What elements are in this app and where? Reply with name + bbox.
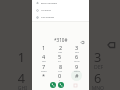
button[interactable]: Call [58, 82, 64, 88]
button[interactable]: 8 [53, 63, 67, 72]
button[interactable]: 4 [37, 53, 51, 62]
button[interactable]: Call settings [32, 14, 89, 21]
staticText: 1 [18, 48, 27, 65]
staticText: 6 [94, 69, 103, 85]
staticText: 3 [94, 48, 103, 65]
button[interactable]: 7 [37, 63, 51, 72]
staticText: + [59, 79, 61, 81]
button[interactable]: Accounts [32, 7, 89, 14]
button[interactable]: Add contact [72, 82, 78, 88]
staticText: MNO [92, 85, 106, 90]
staticText: 4 [42, 53, 46, 60]
button[interactable]: # [70, 72, 84, 81]
staticText: 5 [55, 69, 64, 85]
staticText: 5 [58, 53, 62, 60]
staticText: 2 [57, 48, 66, 65]
staticText: 3 [75, 44, 79, 51]
button[interactable]: Backspace [79, 39, 85, 45]
staticText: ABC [58, 51, 63, 53]
staticText: Call settings [41, 16, 55, 19]
staticText: DEF [94, 65, 103, 69]
staticText: DEF [75, 51, 79, 53]
staticText: 9 [75, 63, 79, 70]
button[interactable]: 6 [70, 53, 84, 62]
staticText: ABC [55, 65, 66, 69]
staticText: *310# [45, 32, 78, 46]
button[interactable]: 3 [70, 44, 84, 53]
staticText: Block numbers [41, 2, 58, 5]
staticText: 0 [58, 72, 62, 79]
button[interactable]: Call [50, 82, 56, 88]
staticText: GHI [42, 60, 46, 62]
staticText: JKL [55, 85, 64, 90]
staticText: WXYZ [74, 70, 80, 72]
staticText: Accounts [41, 9, 51, 12]
staticText: # [75, 72, 79, 79]
button[interactable]: 2 [53, 44, 67, 53]
staticText: GHI [18, 85, 27, 90]
button[interactable]: 5 [53, 53, 67, 62]
staticText: 1 [42, 44, 46, 51]
staticText: *310# [54, 37, 68, 43]
staticText: MNO [74, 60, 80, 62]
staticText: JKL [58, 60, 62, 62]
staticText: 7 [42, 63, 46, 70]
staticText: PQRS [41, 70, 47, 72]
staticText: 2 [59, 44, 63, 51]
staticText: 4 [18, 69, 27, 85]
staticText: 6 [75, 53, 79, 60]
staticText: 8 [59, 63, 63, 70]
button[interactable]: 9 [70, 63, 84, 72]
staticText: * [42, 72, 46, 79]
button[interactable]: 1 [37, 44, 51, 53]
button[interactable]: Block numbers [32, 0, 89, 7]
button[interactable]: * [37, 72, 51, 81]
button[interactable]: 0 [53, 72, 67, 81]
staticText: TUV [58, 70, 63, 72]
